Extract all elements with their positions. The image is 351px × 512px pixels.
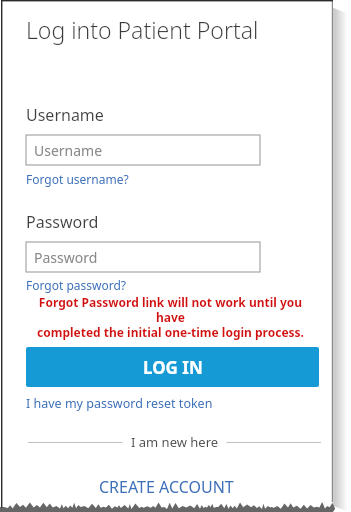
button[interactable]: Password [26,242,260,272]
staticText: Password [34,248,98,267]
button[interactable]: I have my password reset token [26,395,213,412]
staticText: I am new here [131,433,219,451]
staticText: Log into Patient Portal [26,14,259,45]
staticText: Username [34,141,103,160]
button[interactable]: CREATE ACCOUNT [93,474,240,500]
button[interactable]: LOG IN [26,347,319,387]
staticText: Password [26,211,99,233]
staticText: Forgot Password link will not work until… [24,294,317,340]
button[interactable]: Username [26,135,260,165]
button[interactable]: Forgot password? [26,277,127,293]
staticText: Username [26,104,104,126]
staticText: I have my password reset token [26,395,213,412]
staticText: Forgot password? [26,277,127,293]
staticText: CREATE ACCOUNT [99,476,234,498]
staticText: LOG IN [143,356,203,379]
staticText: Forgot username? [26,171,129,187]
button[interactable]: Forgot username? [26,171,129,187]
